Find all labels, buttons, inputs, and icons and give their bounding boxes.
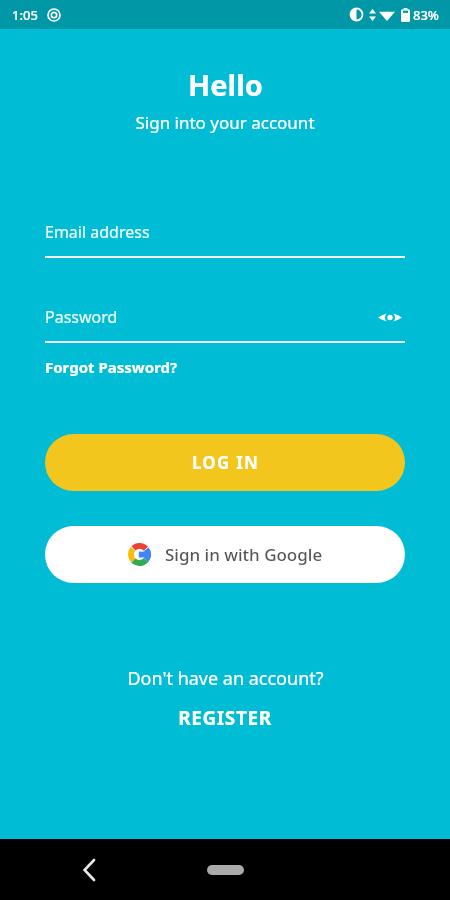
button[interactable]: Password — [45, 301, 405, 333]
button[interactable]: Email address — [45, 216, 405, 258]
staticText: LOG IN — [192, 451, 259, 474]
staticText: Email address — [45, 221, 150, 243]
button[interactable]: Show password — [375, 302, 405, 332]
button[interactable]: LOG IN — [45, 434, 405, 491]
staticText: Password — [45, 306, 375, 328]
staticText: Hello — [188, 65, 263, 104]
staticText: 1:05 — [12, 6, 38, 24]
button[interactable]: Back — [70, 851, 108, 889]
staticText: REGISTER — [178, 705, 272, 731]
button[interactable]: Forgot Password? — [45, 357, 178, 377]
button[interactable]: Home — [190, 857, 260, 883]
staticText: 83% — [413, 6, 439, 24]
button[interactable]: REGISTER — [178, 705, 272, 731]
staticText: Sign in with Google — [165, 543, 323, 566]
staticText: Don't have an account? — [127, 666, 324, 691]
button[interactable]: Sign in with Google — [45, 526, 405, 583]
staticText: Sign into your account — [135, 111, 315, 134]
staticText: Forgot Password? — [45, 357, 178, 377]
